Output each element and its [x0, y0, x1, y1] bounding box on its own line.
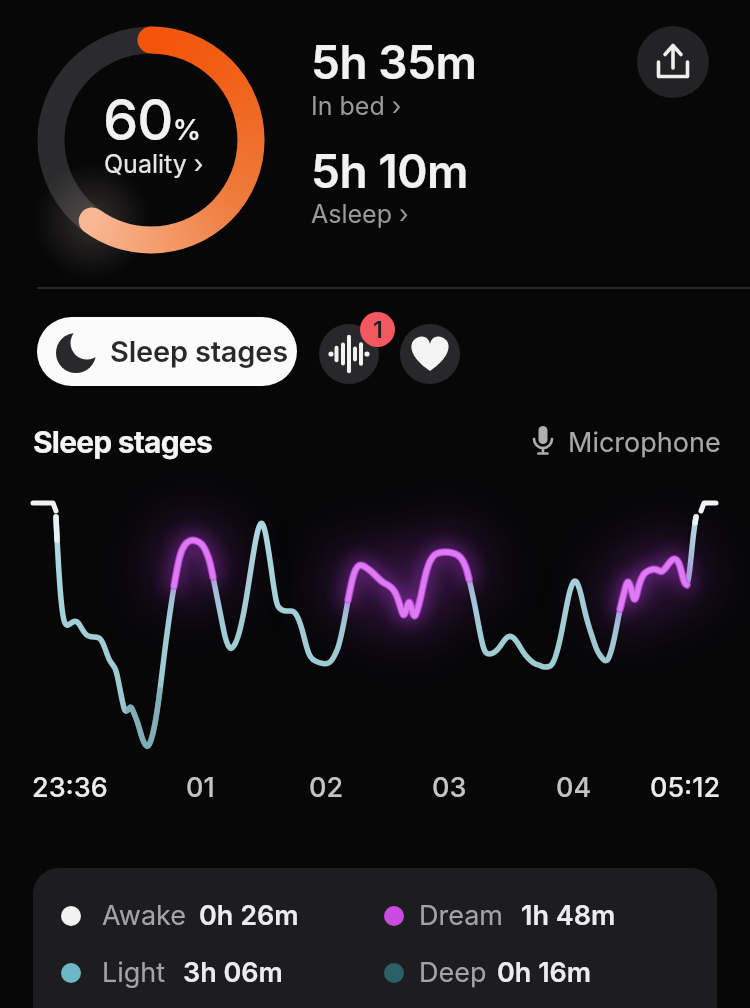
staticText: 60%: [103, 86, 201, 154]
button[interactable]: Microphone: [0, 0, 153, 33]
staticText: 5h 35m: [311, 34, 477, 90]
staticText: 03: [432, 771, 467, 804]
staticText: 0h 16m: [497, 956, 592, 989]
staticText: 3h 06m: [183, 956, 283, 989]
staticText: 1: [373, 316, 383, 344]
staticText: Dream: [419, 899, 504, 932]
staticText: 5h 10m: [311, 143, 468, 199]
staticText: 01: [186, 771, 215, 804]
staticText: Deep: [419, 956, 487, 989]
staticText: 04: [556, 771, 592, 804]
staticText: Awake: [102, 899, 187, 932]
staticText: 1h 48m: [521, 899, 616, 932]
staticText: 0h 26m: [199, 899, 299, 932]
button[interactable]: [319, 324, 379, 384]
staticText: 02: [309, 771, 344, 804]
staticText: Sleep stages: [110, 334, 288, 369]
staticText: 05:12: [650, 771, 721, 804]
staticText: 23:36: [32, 771, 108, 804]
button[interactable]: Sleep stages: [37, 317, 297, 386]
staticText: Sleep stages: [33, 424, 212, 460]
button[interactable]: [400, 324, 460, 384]
button[interactable]: [60, 60, 242, 220]
staticText: Quality ›: [104, 149, 204, 179]
button[interactable]: [637, 26, 709, 98]
staticText: Light: [102, 956, 166, 989]
